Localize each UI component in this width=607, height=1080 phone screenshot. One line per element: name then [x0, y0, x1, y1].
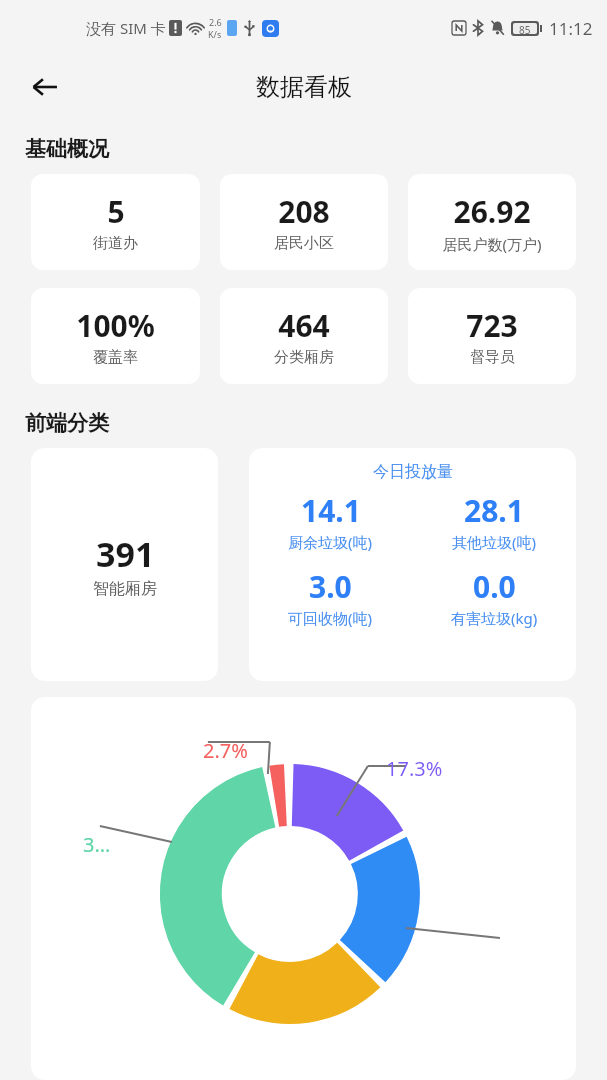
staticText: 2.7%: [203, 737, 248, 764]
staticText: 可回收物(吨): [288, 608, 373, 628]
staticText: 85: [519, 23, 531, 34]
staticText: 11:12: [549, 17, 593, 40]
staticText: 覆盖率: [93, 348, 138, 367]
staticText: 208: [278, 191, 330, 232]
staticText: 2.6: [209, 16, 222, 28]
staticText: 没有 SIM 卡: [86, 18, 166, 38]
button[interactable]: 100%: [31, 288, 200, 384]
button[interactable]: 208: [220, 174, 388, 270]
button[interactable]: 464: [220, 288, 388, 384]
staticText: 今日投放量: [373, 462, 453, 482]
staticText: 分类厢房: [274, 348, 334, 367]
button[interactable]: 723: [408, 288, 576, 384]
staticText: 数据看板: [256, 72, 352, 102]
staticText: 391: [96, 531, 155, 577]
button[interactable]: 5: [31, 174, 200, 270]
staticText: 723: [466, 305, 518, 346]
staticText: 街道办: [93, 234, 138, 253]
staticText: 督导员: [470, 348, 515, 367]
staticText: 智能厢房: [93, 579, 157, 599]
staticText: 居民户数(万户): [442, 234, 542, 254]
staticText: 5: [107, 191, 125, 232]
staticText: 464: [278, 305, 330, 346]
staticText: 居民小区: [274, 234, 334, 253]
staticText: 有害垃圾(kg): [451, 608, 538, 628]
staticText: K/s: [208, 28, 222, 40]
button[interactable]: Back: [22, 64, 68, 110]
staticText: 厨余垃圾(吨): [288, 532, 373, 552]
staticText: 14.1: [301, 490, 361, 531]
staticText: 26.92: [453, 191, 531, 232]
button[interactable]: 391: [31, 448, 218, 681]
staticText: 3…: [83, 831, 111, 858]
staticText: 其他垃圾(吨): [452, 532, 537, 552]
staticText: 0.0: [473, 566, 516, 607]
staticText: 基础概况: [25, 136, 109, 162]
staticText: 28.1: [464, 490, 524, 531]
staticText: 100%: [76, 305, 155, 346]
button[interactable]: 26.92: [408, 174, 576, 270]
staticText: 3.0: [309, 566, 352, 607]
staticText: 前端分类: [25, 410, 109, 436]
button[interactable]: 今日投放量: [249, 448, 576, 681]
staticText: 17.3%: [386, 755, 443, 782]
